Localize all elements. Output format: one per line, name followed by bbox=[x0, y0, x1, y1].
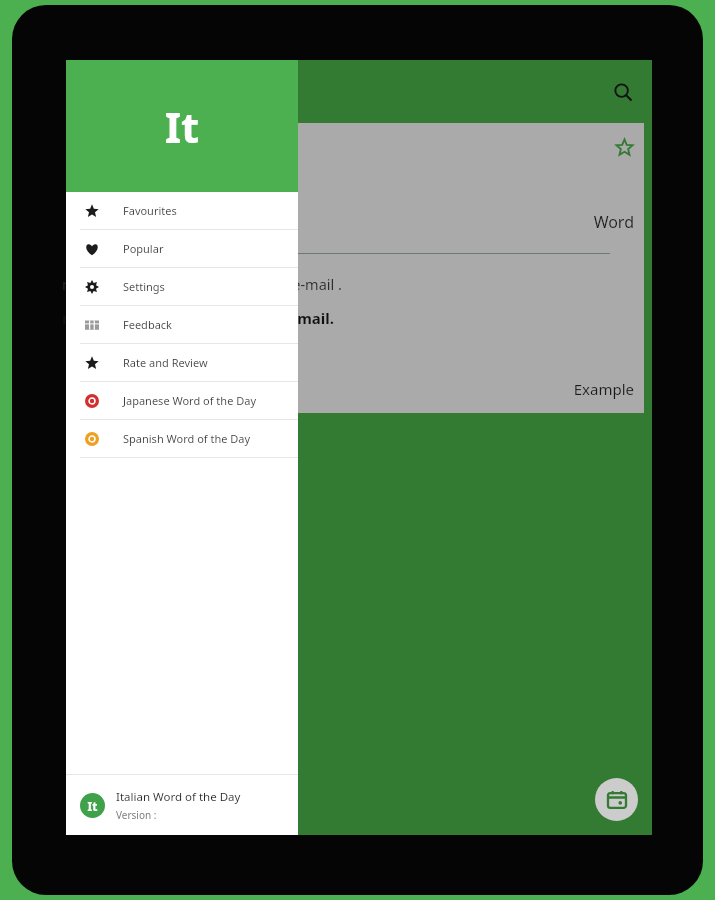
button[interactable]: Spanish Word of the Day bbox=[66, 420, 298, 457]
button[interactable]: Rate and Review bbox=[66, 344, 298, 381]
staticText: Version : bbox=[116, 808, 157, 822]
button[interactable]: It bbox=[66, 775, 298, 835]
staticText: Popular bbox=[123, 241, 164, 256]
staticText: Feedback bbox=[123, 317, 172, 332]
button[interactable]: Search bbox=[602, 71, 644, 113]
staticText: Settings bbox=[123, 279, 165, 294]
button[interactable]: Settings bbox=[66, 268, 298, 305]
staticText: Rate and Review bbox=[123, 355, 208, 370]
button[interactable]: Favourite bbox=[610, 133, 638, 161]
button[interactable]: Popular bbox=[66, 230, 298, 267]
button[interactable]: Japanese Word of the Day bbox=[66, 382, 298, 419]
staticText: Favourites bbox=[123, 203, 177, 218]
staticText: Italian Word of the Day bbox=[116, 789, 241, 805]
button[interactable]: Feedback bbox=[66, 306, 298, 343]
button[interactable]: Favourites bbox=[66, 192, 298, 229]
staticText: Word bbox=[72, 211, 634, 233]
button[interactable]: Favourite bbox=[72, 123, 644, 413]
staticText: Spanish Word of the Day bbox=[123, 431, 251, 446]
staticText: It bbox=[66, 98, 298, 155]
staticText: new password will be sent by e-mail. bbox=[62, 308, 634, 328]
staticText: Japanese Word of the Day bbox=[123, 393, 257, 408]
staticText: Example bbox=[72, 379, 634, 399]
staticText: It bbox=[80, 798, 105, 814]
button[interactable]: Calendar bbox=[595, 778, 638, 821]
staticText: nuova password verrà inviata per e-mail … bbox=[62, 274, 634, 294]
